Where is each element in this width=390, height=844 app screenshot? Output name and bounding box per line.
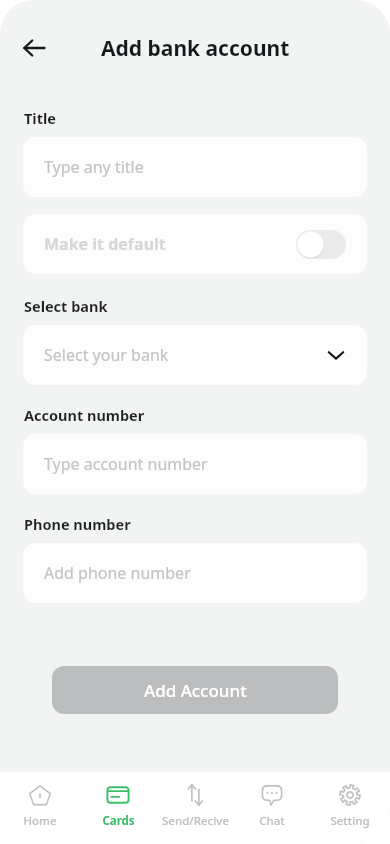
staticText: Account number: [24, 405, 145, 425]
staticText: Home: [23, 813, 57, 829]
button[interactable]: Setting: [313, 780, 387, 831]
staticText: Title: [24, 108, 56, 128]
staticText: Type account number: [44, 453, 208, 475]
staticText: Add bank account: [101, 34, 290, 63]
staticText: Add Account: [144, 679, 247, 702]
staticText: Type any title: [44, 156, 144, 178]
staticText: Phone number: [24, 514, 131, 534]
button[interactable]: Type account number: [23, 434, 367, 494]
button[interactable]: Make it default: [23, 214, 367, 274]
button[interactable]: Send/Recive: [158, 780, 232, 831]
staticText: Setting: [330, 813, 370, 829]
staticText: Make it default: [44, 233, 166, 255]
button[interactable]: Cards: [81, 780, 155, 831]
staticText: Select bank: [24, 296, 108, 316]
button[interactable]: Add phone number: [23, 543, 367, 603]
staticText: Chat: [259, 813, 285, 829]
button[interactable]: Select your bank: [23, 325, 367, 385]
button[interactable]: Back: [12, 26, 56, 70]
button[interactable]: Home: [3, 780, 77, 831]
button[interactable]: Type any title: [23, 137, 367, 197]
staticText: Send/Recive: [162, 813, 229, 829]
button[interactable]: Add Account: [52, 666, 338, 714]
staticText: Add phone number: [44, 562, 191, 584]
button[interactable]: Chat: [235, 780, 309, 831]
staticText: Select your bank: [44, 344, 169, 366]
staticText: Cards: [102, 813, 135, 829]
